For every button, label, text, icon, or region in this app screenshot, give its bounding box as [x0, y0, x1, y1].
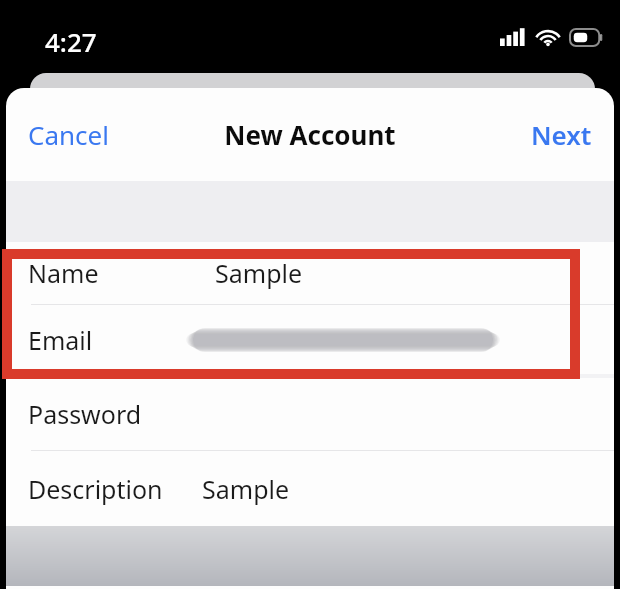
staticText: New Account — [224, 117, 396, 152]
staticText: 4:27 — [45, 24, 97, 59]
staticText: Cancel — [28, 117, 109, 152]
staticText: Sample — [202, 472, 290, 506]
staticText: Sample — [215, 256, 303, 290]
button[interactable]: Name — [6, 242, 614, 304]
staticText: Description — [28, 472, 163, 506]
staticText: Email — [28, 323, 93, 357]
staticText: Password — [28, 397, 142, 431]
button[interactable]: Email — [6, 305, 614, 374]
button[interactable]: Cancel — [16, 107, 121, 162]
staticText: Name — [28, 256, 99, 290]
staticText: Next — [531, 117, 592, 152]
button[interactable]: Password — [6, 378, 614, 450]
button[interactable]: Next — [519, 107, 604, 162]
button[interactable]: Description — [6, 451, 614, 526]
